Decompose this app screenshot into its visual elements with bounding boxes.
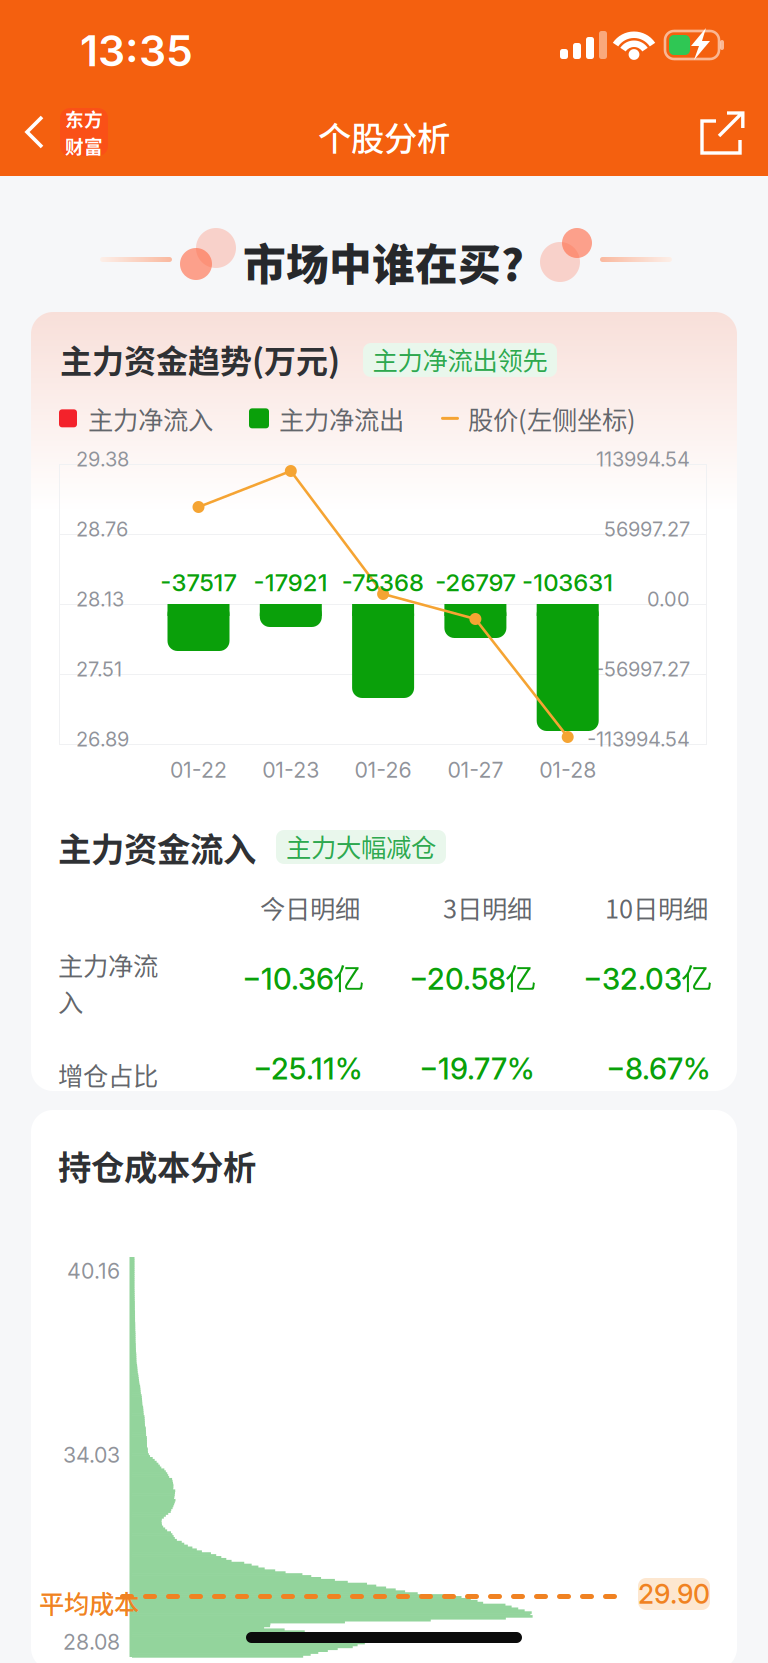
staticText: 56997.27 xyxy=(604,517,690,541)
staticText: -75368 xyxy=(342,568,424,597)
staticText: 34.03 xyxy=(63,1442,120,1468)
staticText: -37517 xyxy=(160,568,236,597)
staticText: 10日明细 xyxy=(605,889,708,926)
staticText: 个股分析 xyxy=(318,112,450,160)
staticText: 增仓占比 xyxy=(58,1056,158,1093)
button[interactable]: 返回 xyxy=(0,88,122,176)
staticText: 01-27 xyxy=(447,757,503,783)
staticText: 平均成本 xyxy=(39,1584,139,1621)
staticText: −20.58亿 xyxy=(409,960,535,997)
staticText: 主力净流出领先 xyxy=(372,341,547,377)
staticText: −19.77% xyxy=(419,1051,535,1086)
staticText: −8.67% xyxy=(606,1051,711,1086)
staticText: 东方 xyxy=(65,105,103,132)
staticText: 28.08 xyxy=(63,1629,120,1655)
staticText: −25.11% xyxy=(253,1051,363,1086)
button[interactable]: 分享 xyxy=(690,100,756,168)
staticText: 市场中谁在买? xyxy=(243,231,524,293)
staticText: 13:35 xyxy=(80,25,193,77)
staticText: 主力大幅减仓 xyxy=(286,828,436,864)
staticText: 28.13 xyxy=(76,587,124,611)
staticText: 27.51 xyxy=(76,657,122,681)
staticText: 29.38 xyxy=(76,447,129,471)
staticText: 01-28 xyxy=(539,757,596,783)
staticText: 40.16 xyxy=(67,1258,120,1284)
staticText: 主力资金趋势(万元) xyxy=(60,336,340,382)
staticText: 主力资金流入 xyxy=(58,823,256,871)
staticText: 今日明细 xyxy=(260,889,360,926)
staticText: 3日明细 xyxy=(443,889,532,926)
staticText: 29.90 xyxy=(638,1578,710,1610)
staticText: -26797 xyxy=(435,568,515,597)
staticText: -17921 xyxy=(254,568,328,597)
staticText: 113994.54 xyxy=(596,447,690,471)
staticText: 主力净流 入 xyxy=(58,946,158,1019)
staticText: 主力净流出 xyxy=(279,400,404,437)
staticText: 26.89 xyxy=(76,727,129,751)
staticText: 持仓成本分析 xyxy=(58,1141,256,1189)
staticText: −32.03亿 xyxy=(583,960,711,997)
staticText: -56997.27 xyxy=(595,657,690,681)
staticText: -113994.54 xyxy=(587,727,690,751)
staticText: 01-23 xyxy=(262,757,319,783)
staticText: 股价(左侧坐标) xyxy=(468,400,636,437)
staticText: 财富 xyxy=(65,132,103,159)
staticText: 28.76 xyxy=(76,517,128,541)
staticText: −10.36亿 xyxy=(242,960,363,997)
staticText: 0.00 xyxy=(647,587,690,611)
staticText: 01-26 xyxy=(355,757,412,783)
staticText: 主力净流入 xyxy=(88,400,213,437)
staticText: 01-22 xyxy=(170,757,227,783)
staticText: -103631 xyxy=(522,568,613,597)
